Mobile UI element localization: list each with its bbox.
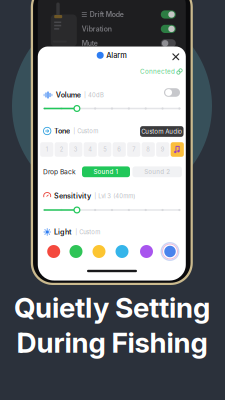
button[interactable]: 2 bbox=[55, 142, 68, 157]
button[interactable]: Sound 2 bbox=[132, 166, 182, 177]
button[interactable]: 5 bbox=[98, 142, 111, 157]
staticText: | Lvl 3 (40mm) bbox=[94, 192, 135, 200]
staticText: 8 bbox=[146, 146, 150, 153]
staticText: 7 bbox=[132, 146, 135, 153]
staticText: 4 bbox=[88, 146, 92, 153]
button[interactable]: 8 bbox=[142, 142, 155, 157]
button[interactable]: Light colour, selected bbox=[160, 242, 179, 261]
staticText: 9 bbox=[161, 146, 165, 153]
staticText: Custom Audio bbox=[141, 128, 182, 135]
staticText: Sound 1 bbox=[93, 168, 118, 175]
button[interactable]: 3 bbox=[69, 142, 82, 157]
button[interactable]: Sound 1 bbox=[82, 166, 130, 177]
staticText: Sound 2 bbox=[144, 168, 170, 175]
staticText: | 40dB bbox=[84, 91, 104, 99]
staticText: 6 bbox=[117, 146, 121, 153]
button[interactable]: Volume on bbox=[162, 86, 182, 98]
staticText: Mute bbox=[82, 39, 98, 47]
staticText: Light bbox=[54, 228, 72, 236]
staticText: Quietly Setting bbox=[14, 291, 210, 324]
staticText: | Custom bbox=[75, 228, 100, 236]
staticText: 3 bbox=[74, 146, 78, 153]
staticText: During Fishing bbox=[16, 325, 207, 359]
staticText: | Custom bbox=[73, 127, 98, 135]
staticText: Alarm bbox=[106, 51, 127, 60]
staticText: Tone bbox=[54, 127, 70, 135]
button[interactable]: 7 bbox=[127, 142, 140, 157]
staticText: Sensitivity bbox=[54, 192, 91, 200]
button[interactable]: Connected bbox=[140, 67, 182, 76]
button[interactable]: Light colour bbox=[138, 243, 154, 259]
staticText: Connected bbox=[140, 68, 175, 75]
button[interactable]: 9 bbox=[156, 142, 169, 157]
button[interactable]: Light colour bbox=[114, 243, 130, 259]
staticText: 5 bbox=[103, 146, 106, 153]
button[interactable]: Light colour bbox=[91, 243, 107, 259]
staticText: 2 bbox=[60, 146, 63, 153]
button[interactable]: 4 bbox=[84, 142, 97, 157]
staticText: Drift Mode bbox=[90, 10, 124, 19]
button[interactable]: Light colour bbox=[68, 243, 84, 259]
button[interactable]: 6 bbox=[113, 142, 126, 157]
button[interactable]: Custom Audio bbox=[140, 126, 184, 137]
button[interactable]: Light colour bbox=[46, 243, 62, 259]
staticText: Volume bbox=[56, 91, 81, 99]
staticText: Drop Back bbox=[43, 168, 76, 176]
button[interactable]: Custom tone bbox=[171, 142, 184, 157]
button[interactable]: Close bbox=[168, 49, 184, 65]
staticText: Vibration bbox=[82, 25, 112, 33]
staticText: 1 bbox=[46, 146, 48, 153]
button[interactable]: 1 bbox=[40, 142, 53, 157]
